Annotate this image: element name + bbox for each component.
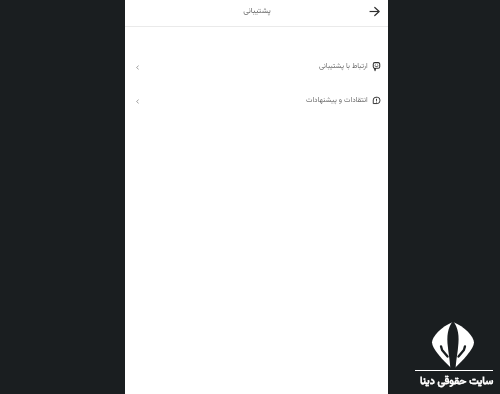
staticText: ارتباط با پشتیبانی <box>319 61 368 72</box>
button[interactable]: انتقادات و پیشنهادات <box>125 86 388 115</box>
staticText: انتقادات و پیشنهادات <box>306 95 368 106</box>
button[interactable]: ارتباط با پشتیبانی <box>125 52 388 81</box>
staticText: سایت حقوقی دینا <box>420 373 494 390</box>
button[interactable]: Back <box>367 4 381 18</box>
staticText: پشتیبانی <box>243 5 271 18</box>
